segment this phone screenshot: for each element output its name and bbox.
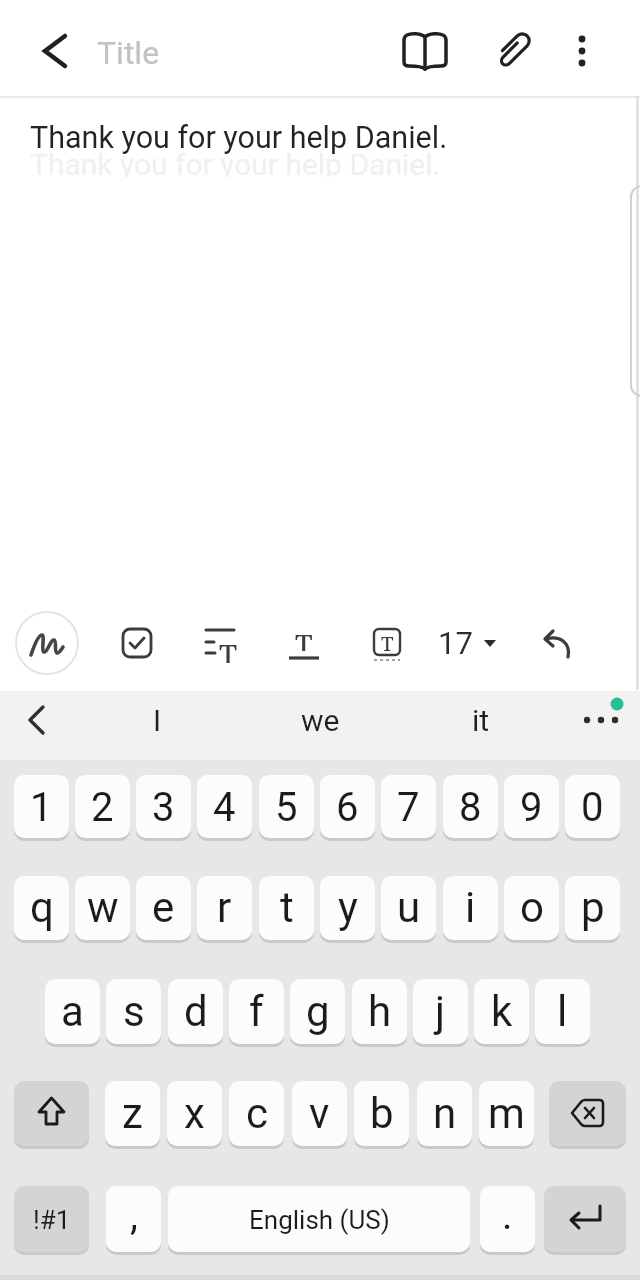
button[interactable]: w: [75, 876, 130, 943]
staticText: Thank you for your help Daniel.: [30, 147, 441, 177]
button[interactable]: T: [357, 613, 417, 673]
button[interactable]: [381, 6, 469, 94]
button[interactable]: q: [14, 876, 69, 943]
staticText: v: [309, 1089, 330, 1138]
staticText: 0: [581, 784, 604, 831]
staticText: 5: [275, 784, 298, 831]
button[interactable]: e: [136, 876, 191, 943]
staticText: .: [502, 1192, 513, 1239]
button[interactable]: r: [197, 876, 252, 943]
staticText: we: [301, 703, 340, 738]
button[interactable]: .: [480, 1186, 535, 1255]
staticText: r: [217, 883, 232, 932]
staticText: z: [122, 1089, 143, 1138]
button[interactable]: [469, 6, 557, 94]
button[interactable]: 9: [504, 775, 559, 841]
button[interactable]: [526, 613, 586, 673]
button[interactable]: c: [229, 1081, 284, 1149]
staticText: j: [435, 987, 446, 1036]
staticText: l: [557, 987, 568, 1036]
staticText: m: [488, 1089, 525, 1138]
staticText: 4: [213, 784, 236, 831]
staticText: x: [184, 1089, 205, 1138]
button[interactable]: I: [107, 685, 207, 755]
button[interactable]: [107, 613, 167, 673]
button[interactable]: m: [479, 1081, 534, 1149]
button[interactable]: j: [413, 979, 468, 1047]
staticText: p: [581, 883, 605, 932]
button[interactable]: 1: [14, 775, 69, 841]
button[interactable]: ,: [106, 1186, 161, 1255]
staticText: i: [465, 883, 476, 932]
button[interactable]: i: [443, 876, 498, 943]
staticText: English (US): [249, 1205, 390, 1235]
button[interactable]: English (US): [168, 1186, 470, 1255]
button[interactable]: [549, 1081, 626, 1149]
staticText: h: [368, 987, 392, 1036]
button[interactable]: t: [259, 876, 314, 943]
button[interactable]: 0: [565, 775, 620, 841]
button[interactable]: T: [190, 613, 250, 673]
staticText: o: [520, 883, 544, 932]
button[interactable]: h: [352, 979, 407, 1047]
button[interactable]: x: [167, 1081, 222, 1149]
button[interactable]: 5: [259, 775, 314, 841]
button[interactable]: T: [274, 613, 334, 673]
button[interactable]: 4: [197, 775, 252, 841]
staticText: f: [249, 987, 264, 1036]
button[interactable]: 17: [424, 613, 508, 673]
staticText: 2: [91, 784, 114, 831]
button[interactable]: [14, 610, 80, 676]
button[interactable]: o: [504, 876, 559, 943]
staticText: Title: [97, 34, 160, 72]
staticText: d: [184, 987, 208, 1036]
button[interactable]: 2: [75, 775, 130, 841]
staticText: 17: [438, 625, 473, 661]
button[interactable]: k: [474, 979, 529, 1047]
staticText: T: [381, 630, 394, 654]
button[interactable]: 8: [443, 775, 498, 841]
staticText: 7: [397, 784, 420, 831]
staticText: k: [491, 987, 513, 1036]
button[interactable]: b: [354, 1081, 409, 1149]
staticText: T: [219, 635, 238, 663]
staticText: 3: [152, 784, 175, 831]
button[interactable]: 6: [320, 775, 375, 841]
staticText: n: [433, 1089, 457, 1138]
button[interactable]: g: [290, 979, 345, 1047]
staticText: 1: [30, 784, 53, 831]
staticText: w: [87, 883, 119, 932]
button[interactable]: n: [417, 1081, 472, 1149]
button[interactable]: p: [565, 876, 620, 943]
button[interactable]: [544, 1186, 626, 1255]
button[interactable]: 7: [381, 775, 436, 841]
button[interactable]: [0, 0, 96, 96]
staticText: q: [30, 883, 54, 932]
button[interactable]: f: [229, 979, 284, 1047]
button[interactable]: 3: [136, 775, 191, 841]
staticText: c: [246, 1089, 268, 1138]
button[interactable]: [14, 1081, 89, 1149]
button[interactable]: !#1: [14, 1186, 89, 1255]
staticText: Thank you for your help Daniel.: [30, 120, 448, 154]
button[interactable]: we: [270, 685, 370, 755]
staticText: ,: [130, 1192, 138, 1239]
staticText: e: [152, 883, 175, 932]
staticText: T: [295, 625, 313, 651]
staticText: 6: [336, 784, 359, 831]
button[interactable]: y: [320, 876, 375, 943]
staticText: u: [397, 883, 421, 932]
button[interactable]: a: [45, 979, 100, 1047]
button[interactable]: it: [431, 685, 531, 755]
button[interactable]: l: [535, 979, 590, 1047]
button[interactable]: z: [105, 1081, 160, 1149]
button[interactable]: s: [106, 979, 161, 1047]
button[interactable]: [566, 685, 636, 755]
button[interactable]: [3, 685, 73, 755]
staticText: I: [153, 703, 162, 738]
button[interactable]: u: [381, 876, 436, 943]
button[interactable]: v: [292, 1081, 347, 1149]
button[interactable]: d: [168, 979, 223, 1047]
button[interactable]: [552, 7, 612, 95]
staticText: 8: [459, 784, 482, 831]
